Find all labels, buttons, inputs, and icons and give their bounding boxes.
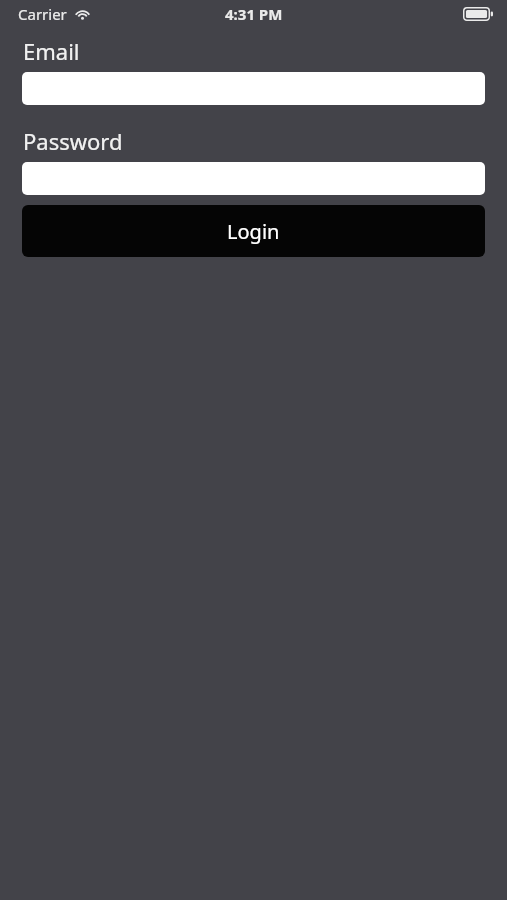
staticText: Carrier	[18, 4, 67, 24]
button[interactable]: Login	[22, 205, 485, 257]
staticText: Login	[227, 218, 280, 245]
other: Battery full	[463, 7, 493, 21]
staticText: Password	[23, 126, 123, 156]
staticText: Email	[23, 36, 80, 66]
button[interactable]: Email input field	[22, 72, 485, 105]
button[interactable]: Password input field	[22, 162, 485, 195]
staticText: 4:31 PM	[225, 4, 283, 24]
other: Wi-Fi signal	[74, 8, 91, 20]
